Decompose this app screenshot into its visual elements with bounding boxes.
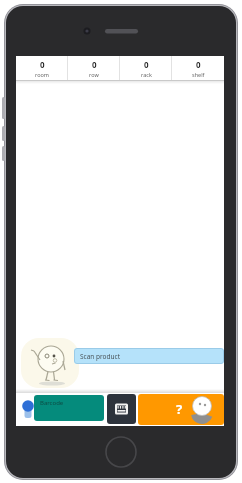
staticText: room [35,71,49,78]
staticText: 0 [40,59,45,70]
staticText: shelf [192,71,205,78]
button[interactable]: ? [138,394,224,425]
staticText: 0 [144,59,149,70]
staticText: 0 [92,59,97,70]
button[interactable] [107,394,136,424]
button[interactable]: Scan product [74,348,224,364]
staticText: Scan product [80,352,121,361]
button[interactable] [18,394,38,424]
staticText: Barcode [40,399,64,407]
staticText: ? [176,400,183,418]
staticText: rack [141,71,152,78]
staticText: row [89,71,99,78]
staticText: 0 [196,59,201,70]
button[interactable]: Barcode [34,395,104,421]
